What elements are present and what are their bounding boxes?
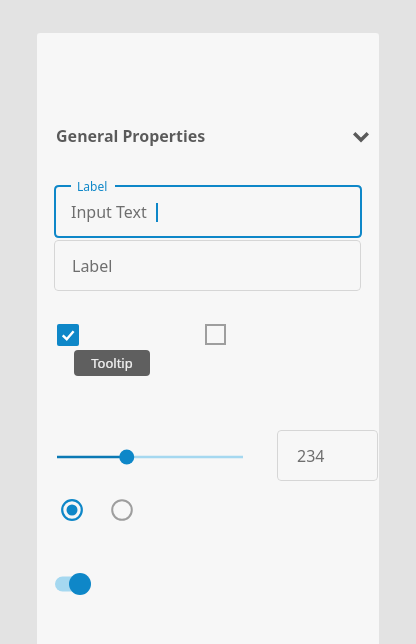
staticText: General Properties [56, 125, 206, 147]
staticText: Label [72, 255, 113, 277]
button[interactable]: General Properties [37, 117, 379, 155]
button[interactable]: 234 [277, 430, 378, 481]
staticText: Tooltip [91, 354, 133, 372]
button[interactable]: Checkbox checked [57, 324, 79, 346]
staticText: 234 [297, 445, 325, 467]
staticText: Input Text [71, 201, 147, 223]
button[interactable]: Label [54, 240, 361, 291]
button[interactable]: Toggle switch, on [49, 566, 109, 602]
button[interactable]: Radio selected [59, 497, 85, 523]
button[interactable]: Slider [49, 441, 249, 473]
other: Collapse section [343, 118, 379, 154]
button[interactable]: Radio unselected [109, 497, 135, 523]
button[interactable]: Checkbox unchecked [205, 324, 226, 345]
button[interactable]: Label [54, 153, 362, 238]
staticText: Label [77, 178, 108, 194]
